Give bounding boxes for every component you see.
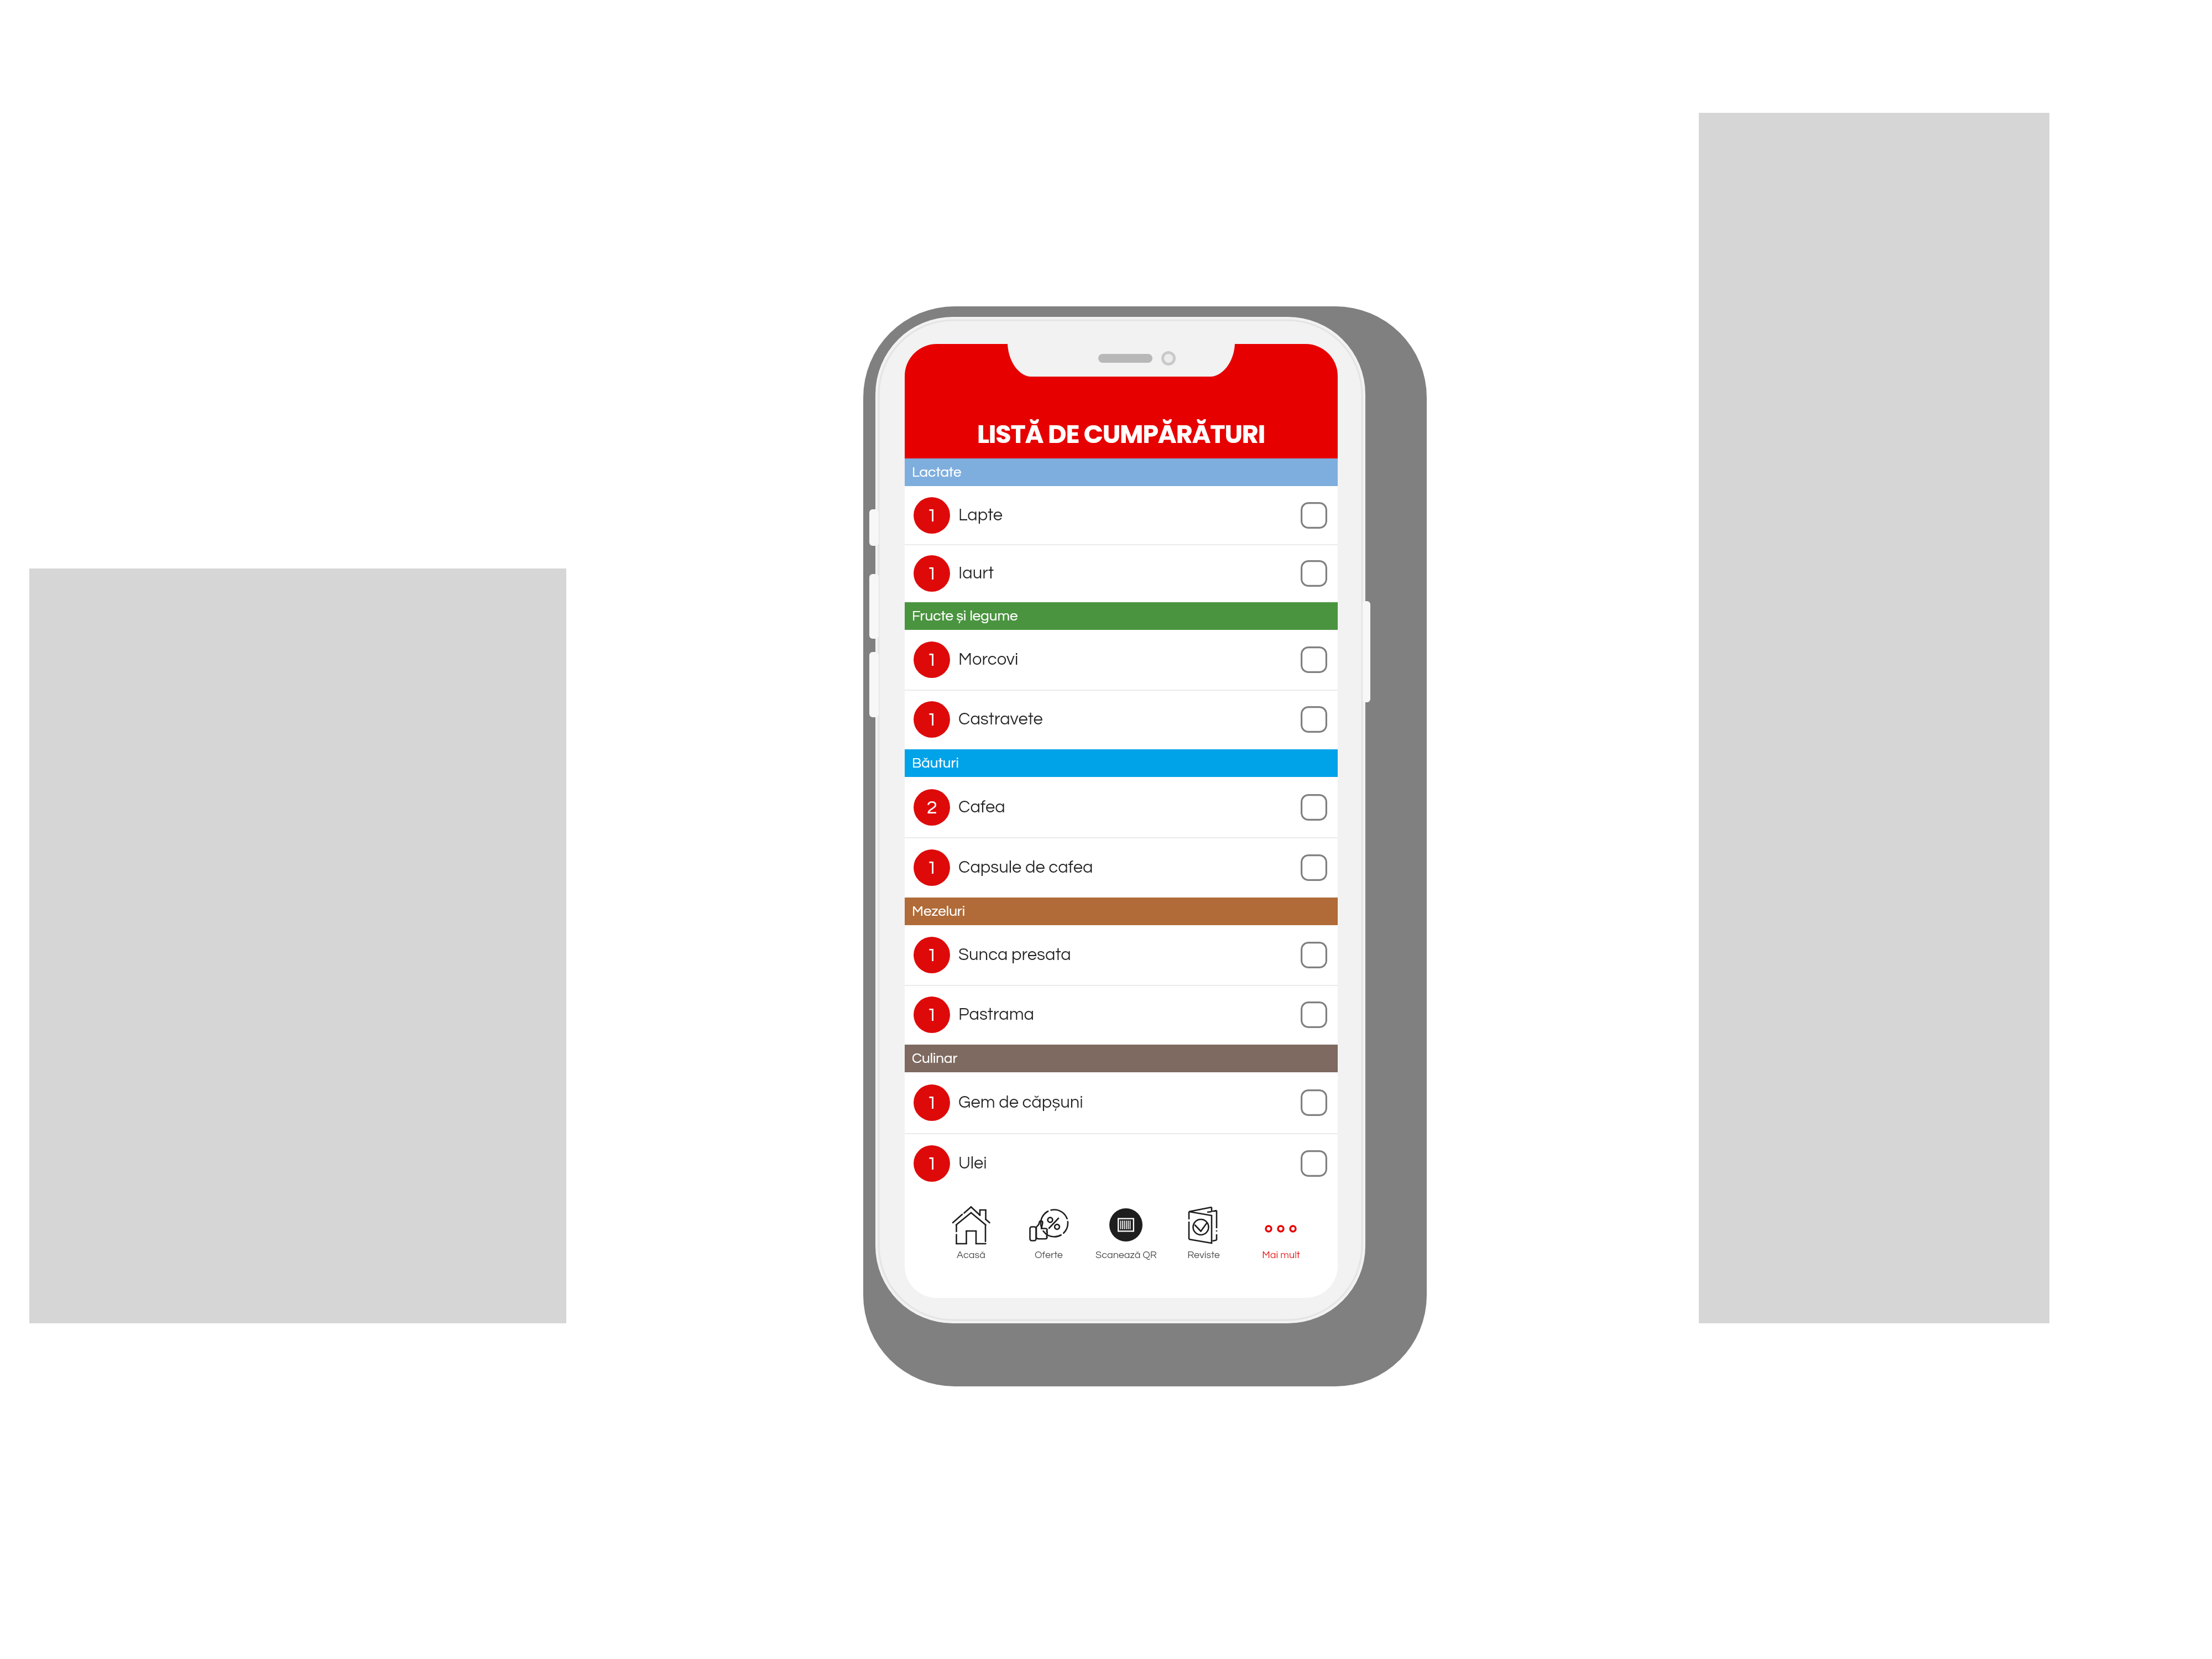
button[interactable]: 1 xyxy=(905,544,1338,602)
staticText: Ulei xyxy=(958,1155,987,1172)
staticText: Castravete xyxy=(958,711,1043,728)
button[interactable]: 1 xyxy=(905,1072,1338,1133)
staticText: 1 xyxy=(927,858,937,878)
button[interactable]: 2 xyxy=(905,777,1338,837)
button[interactable]: 1 xyxy=(905,1133,1338,1194)
staticText: Acasă xyxy=(957,1250,985,1260)
button[interactable]: 1 xyxy=(905,837,1338,898)
button[interactable]: Bifează Lapte xyxy=(1301,502,1327,529)
button[interactable]: 1 xyxy=(905,630,1338,690)
button[interactable]: 1 xyxy=(905,985,1338,1045)
button[interactable]: Reviste xyxy=(1165,1194,1242,1298)
button[interactable]: Acasă xyxy=(932,1194,1010,1298)
button[interactable]: Bifează Ulei xyxy=(1301,1150,1327,1177)
staticText: 1 xyxy=(927,1093,937,1113)
staticText: Pastrama xyxy=(958,1006,1035,1024)
staticText: 1 xyxy=(927,564,937,583)
staticText: Reviste xyxy=(1187,1250,1220,1260)
staticText: Culinar xyxy=(912,1051,958,1066)
staticText: Lapte xyxy=(958,507,1003,524)
staticText: Fructe și legume xyxy=(912,609,1018,624)
staticText: 1 xyxy=(927,710,937,729)
button[interactable]: Scanează QR xyxy=(1087,1194,1165,1298)
staticText: Mai mult xyxy=(1262,1250,1300,1260)
button[interactable]: 1 xyxy=(905,690,1338,749)
staticText: Capsule de cafea xyxy=(958,859,1093,877)
staticText: Băuturi xyxy=(912,756,959,771)
button[interactable]: Bifează Pastrama xyxy=(1301,1001,1327,1028)
staticText: 1 xyxy=(927,506,937,525)
button[interactable]: Mezeluri xyxy=(905,898,1338,925)
button[interactable]: Lactate xyxy=(905,458,1338,486)
button[interactable]: Bifează Gem de căpșuni xyxy=(1301,1089,1327,1116)
button[interactable]: Bifează Castravete xyxy=(1301,706,1327,733)
staticText: Morcovi xyxy=(958,651,1019,669)
staticText: 1 xyxy=(927,1154,937,1173)
staticText: Scanează QR xyxy=(1095,1250,1157,1260)
button[interactable]: Bifează Cafea xyxy=(1301,794,1327,821)
button[interactable]: Oferte xyxy=(1010,1194,1087,1298)
staticText: 1 xyxy=(927,946,937,965)
staticText: Lactate xyxy=(912,465,962,480)
button[interactable]: Bifează Iaurt xyxy=(1301,560,1327,587)
staticText: Sunca presata xyxy=(958,946,1071,964)
button[interactable]: Bifează Capsule de cafea xyxy=(1301,854,1327,881)
button[interactable]: Culinar xyxy=(905,1045,1338,1072)
staticText: LISTĂ DE CUMPĂRĂTURI xyxy=(977,416,1265,452)
staticText: Iaurt xyxy=(958,565,994,582)
staticText: Mezeluri xyxy=(912,904,966,919)
button[interactable]: Fructe și legume xyxy=(905,602,1338,630)
staticText: Cafea xyxy=(958,799,1005,816)
button[interactable]: 1 xyxy=(905,486,1338,544)
staticText: 2 xyxy=(927,798,937,817)
button[interactable]: Băuturi xyxy=(905,749,1338,777)
staticText: 1 xyxy=(927,650,937,670)
staticText: Gem de căpșuni xyxy=(958,1094,1083,1112)
button[interactable]: Mai mult xyxy=(1242,1194,1319,1298)
button[interactable]: Bifează Sunca presata xyxy=(1301,942,1327,968)
button[interactable]: Bifează Morcovi xyxy=(1301,646,1327,673)
staticText: 1 xyxy=(927,1005,937,1025)
staticText: Oferte xyxy=(1035,1250,1063,1260)
button[interactable]: 1 xyxy=(905,925,1338,985)
